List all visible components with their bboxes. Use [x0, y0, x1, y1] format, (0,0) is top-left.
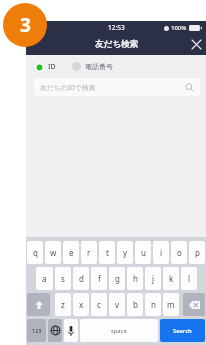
button[interactable]: space	[80, 319, 158, 342]
button[interactable]: k	[163, 267, 179, 290]
button[interactable]: i	[153, 241, 169, 264]
button[interactable]: 友だちのIDで検索	[34, 78, 200, 96]
button[interactable]: Dictation	[64, 319, 78, 342]
staticText: h	[133, 273, 138, 284]
staticText: 友だちのIDで検索	[40, 83, 96, 92]
button[interactable]: b	[127, 293, 143, 316]
staticText: c	[97, 299, 101, 310]
staticText: ID	[48, 62, 56, 72]
staticText: 友だち検索	[95, 39, 138, 50]
button[interactable]: x	[73, 293, 89, 316]
button[interactable]: e	[63, 241, 79, 264]
staticText: j	[152, 273, 155, 284]
staticText: 123	[32, 327, 42, 334]
staticText: k	[169, 273, 174, 284]
staticText: s	[61, 273, 65, 284]
button[interactable]: n	[145, 293, 161, 316]
button[interactable]: z	[55, 293, 71, 316]
staticText: i	[160, 247, 163, 258]
staticText: 3	[20, 12, 31, 38]
button[interactable]: Change keyboard	[48, 319, 62, 342]
staticText: b	[133, 299, 138, 310]
staticText: x	[79, 299, 84, 310]
staticText: t	[106, 247, 109, 258]
staticText: m	[167, 299, 175, 310]
staticText: w	[50, 247, 57, 258]
staticText: r	[87, 247, 91, 258]
button[interactable]: o	[171, 241, 187, 264]
button[interactable]: u	[135, 241, 151, 264]
staticText: y	[123, 247, 128, 258]
button[interactable]: s	[55, 267, 71, 290]
staticText: space	[111, 327, 127, 335]
staticText: q	[33, 247, 38, 258]
button[interactable]: f	[91, 267, 107, 290]
button[interactable]: q	[27, 241, 43, 264]
button[interactable]: g	[109, 267, 125, 290]
button[interactable]: 閉じる	[187, 35, 206, 54]
button[interactable]: Backspace	[183, 293, 205, 316]
staticText: v	[115, 299, 120, 310]
button[interactable]: t	[99, 241, 115, 264]
staticText: g	[115, 273, 120, 284]
staticText: o	[177, 247, 182, 258]
staticText: z	[61, 299, 65, 310]
button[interactable]: j	[145, 267, 161, 290]
button[interactable]: r	[81, 241, 97, 264]
staticText: n	[151, 299, 156, 310]
button[interactable]: a	[36, 267, 53, 290]
staticText: 電話番号	[85, 62, 113, 71]
button[interactable]: 検索	[184, 82, 195, 93]
staticText: p	[195, 247, 200, 258]
staticText: l	[188, 273, 191, 284]
button[interactable]: l	[181, 267, 197, 290]
button[interactable]: m	[163, 293, 179, 316]
staticText: f	[98, 273, 101, 284]
button[interactable]: c	[91, 293, 107, 316]
button[interactable]: y	[117, 241, 133, 264]
button[interactable]: Shift	[27, 293, 50, 316]
button[interactable]: d	[73, 267, 89, 290]
button[interactable]: Search	[160, 319, 205, 342]
button[interactable]: h	[127, 267, 143, 290]
staticText: u	[141, 247, 146, 258]
staticText: 100%	[171, 24, 187, 32]
staticText: 12:53	[108, 23, 125, 32]
button[interactable]: 電話番号	[71, 60, 114, 73]
staticText: a	[42, 273, 47, 284]
staticText: d	[79, 273, 84, 284]
button[interactable]: Numbers	[27, 319, 46, 342]
button[interactable]: v	[109, 293, 125, 316]
staticText: Search	[173, 327, 192, 335]
button[interactable]: ID	[34, 60, 57, 74]
button[interactable]: p	[189, 241, 205, 264]
button[interactable]: w	[45, 241, 61, 264]
staticText: e	[69, 247, 74, 258]
